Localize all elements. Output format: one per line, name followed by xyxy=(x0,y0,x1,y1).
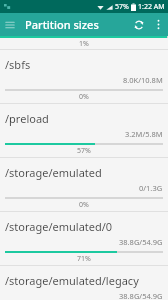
staticText: 71% xyxy=(77,254,91,264)
staticText: 57% xyxy=(115,2,129,12)
staticText: 0% xyxy=(79,92,89,102)
button[interactable]: Open navigation drawer xyxy=(0,15,20,35)
button[interactable]: /sbfs xyxy=(0,50,168,104)
staticText: /sbfs xyxy=(5,57,31,72)
staticText: 57% xyxy=(77,146,91,156)
button[interactable]: Refresh xyxy=(128,14,149,35)
button[interactable]: /storage/emulated/legacy xyxy=(0,266,168,300)
staticText: 0% xyxy=(79,200,89,210)
staticText: 0/1.3G xyxy=(139,183,163,193)
button[interactable]: /storage/emulated/0 xyxy=(0,212,168,266)
button[interactable]: /preload xyxy=(0,104,168,158)
staticText: /storage/emulated/legacy xyxy=(5,273,139,288)
staticText: 8.0K/10.8M xyxy=(123,75,163,85)
staticText: 1% xyxy=(79,39,89,49)
button[interactable]: 1% xyxy=(0,36,168,50)
staticText: /storage/emulated/0 xyxy=(5,219,113,234)
staticText: 38.8G/54.9G xyxy=(119,291,163,300)
staticText: /preload xyxy=(5,111,49,126)
staticText: 1:22 AM xyxy=(138,2,165,12)
button[interactable]: /storage/emulated xyxy=(0,158,168,212)
staticText: 38.8G/54.9G xyxy=(119,237,163,247)
staticText: 3.2M/5.8M xyxy=(125,129,163,139)
staticText: /storage/emulated xyxy=(5,165,102,180)
button[interactable]: More options xyxy=(149,15,168,34)
staticText: Partition sizes xyxy=(25,17,99,32)
